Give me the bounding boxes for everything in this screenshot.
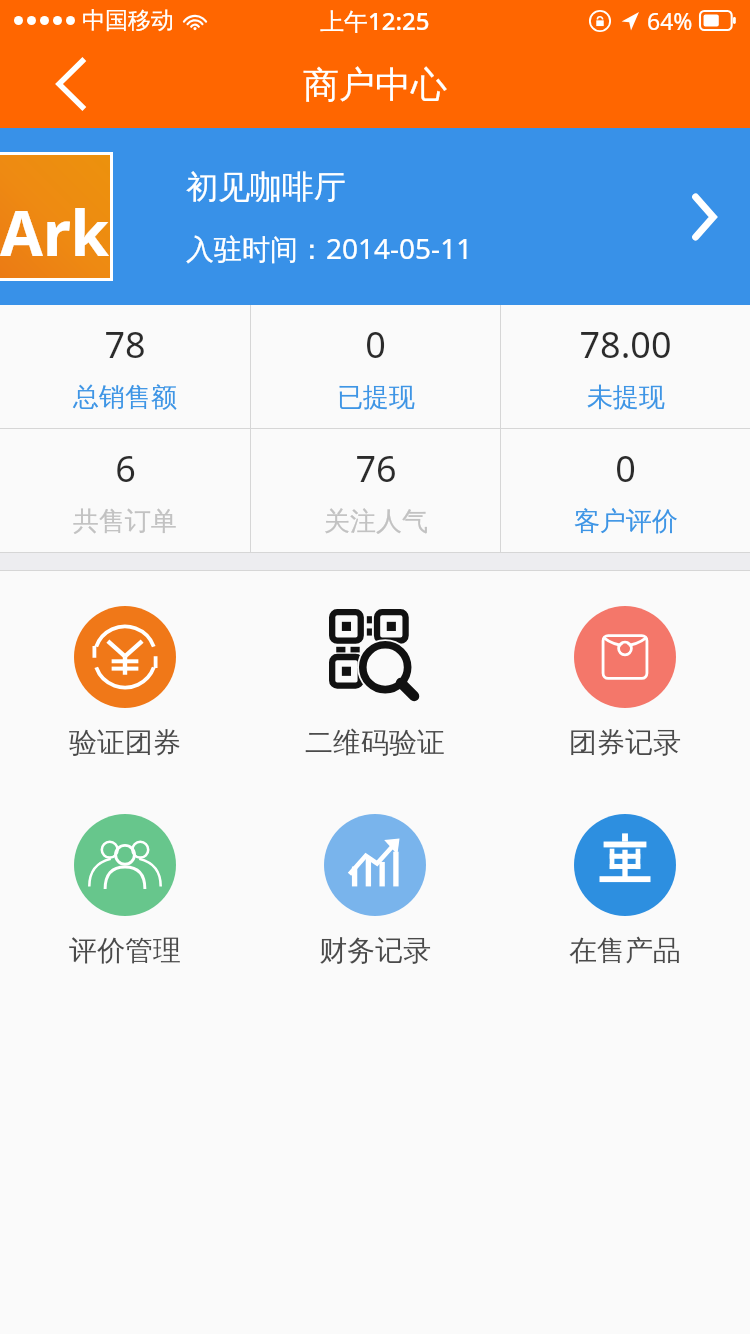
button[interactable]: 在售产品: [500, 814, 750, 968]
staticText: 关注人气: [324, 505, 428, 538]
button[interactable]: 验证团券: [0, 606, 250, 760]
staticText: 0: [365, 320, 386, 369]
staticText: 总销售额: [73, 381, 177, 414]
staticText: 评价管理: [69, 933, 181, 968]
button[interactable]: 评价管理: [0, 814, 250, 968]
staticText: 中国移动: [82, 6, 174, 35]
button[interactable]: 76: [251, 429, 500, 552]
staticText: 未提现: [587, 381, 665, 414]
staticText: 客户评价: [574, 505, 678, 538]
staticText: 0: [615, 444, 636, 493]
button[interactable]: Merchant details: [676, 189, 732, 245]
staticText: 64%: [647, 5, 693, 36]
staticText: 二维码验证: [305, 725, 445, 760]
staticText: 验证团券: [69, 725, 181, 760]
button[interactable]: 0: [251, 305, 500, 428]
staticText: 在售产品: [569, 933, 681, 968]
staticText: 商户中心: [303, 62, 447, 107]
button[interactable]: 78: [0, 305, 250, 428]
button[interactable]: 6: [0, 429, 250, 552]
staticText: 入驻时间：2014-05-11: [186, 229, 473, 267]
staticText: 共售订单: [73, 505, 177, 538]
button[interactable]: 财务记录: [250, 814, 500, 968]
button[interactable]: 0: [501, 429, 750, 552]
staticText: 初见咖啡厅: [186, 167, 346, 207]
staticText: 6: [115, 444, 136, 493]
staticText: 78.00: [579, 320, 672, 369]
staticText: 上午12:25: [320, 4, 430, 37]
staticText: Ark: [0, 190, 110, 274]
staticText: 76: [355, 444, 397, 493]
button[interactable]: 78.00: [501, 305, 750, 428]
staticText: 财务记录: [319, 933, 431, 968]
staticText: 团券记录: [569, 725, 681, 760]
staticText: 78: [104, 320, 146, 369]
button[interactable]: Ark: [0, 128, 750, 305]
button[interactable]: Back: [40, 53, 102, 115]
staticText: 已提现: [337, 381, 415, 414]
button[interactable]: 团券记录: [500, 606, 750, 760]
button[interactable]: 二维码验证: [250, 606, 500, 760]
